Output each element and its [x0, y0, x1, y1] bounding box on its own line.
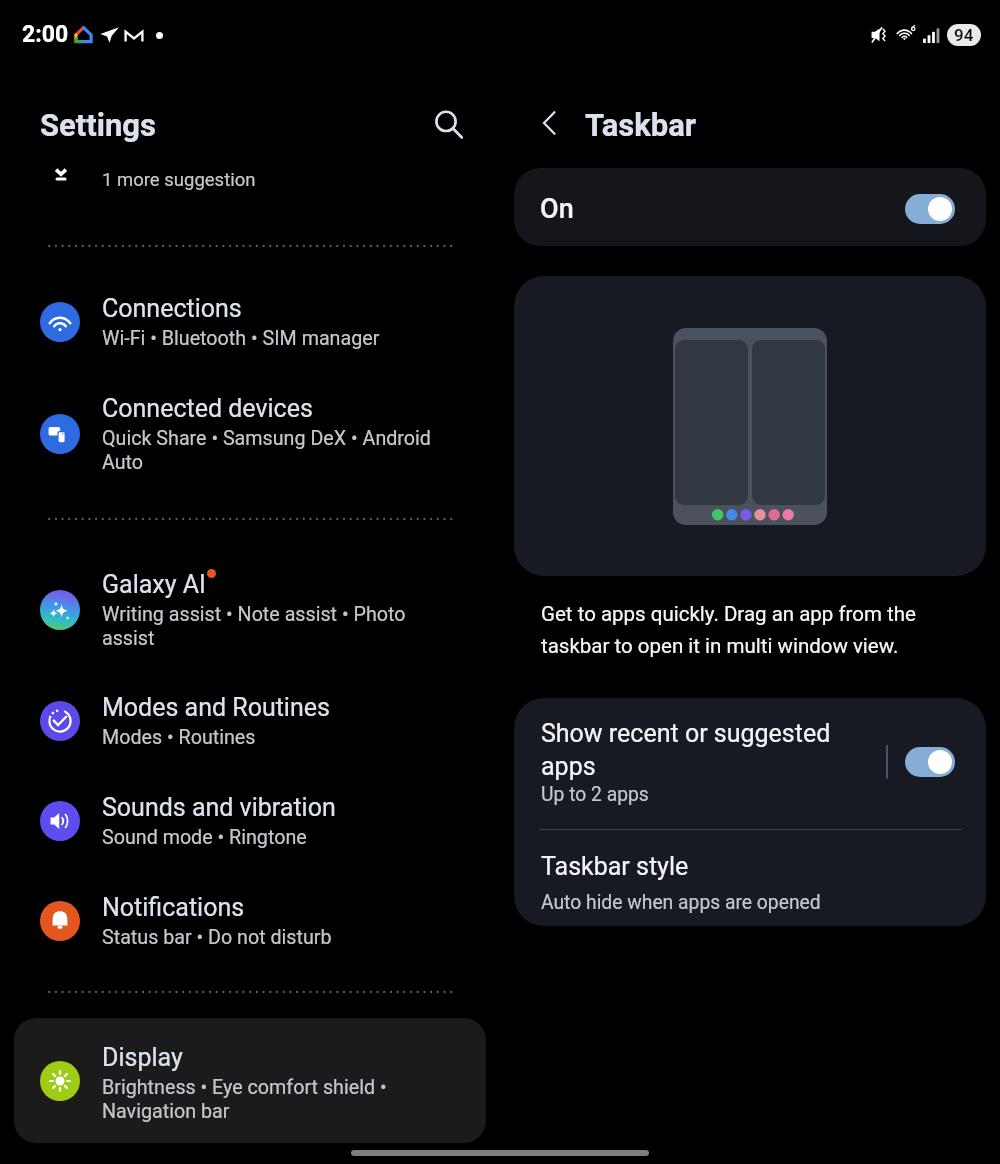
button[interactable]: Taskbar style — [514, 830, 986, 926]
button[interactable]: Modes and Routines — [0, 675, 500, 767]
staticText: Writing assist • Note assist • Photo — [102, 603, 406, 626]
button[interactable]: Sounds and vibration — [0, 775, 500, 867]
button[interactable]: 1 more suggestion — [0, 158, 500, 210]
staticText: On — [540, 193, 574, 225]
staticText: Auto — [102, 451, 144, 474]
staticText: Get to apps quickly. Drag an app from th… — [541, 602, 916, 626]
button[interactable]: Show recent or suggested — [514, 698, 986, 828]
staticText: Taskbar — [585, 107, 697, 143]
staticText: Brightness • Eye comfort shield • — [102, 1076, 387, 1099]
button[interactable]: Search — [424, 100, 472, 148]
button[interactable]: Back — [526, 99, 574, 147]
staticText: Navigation bar — [102, 1100, 230, 1123]
staticText: Sound mode • Ringtone — [102, 826, 307, 849]
button[interactable]: Toggle on — [905, 747, 955, 777]
staticText: 94 — [954, 25, 974, 45]
button[interactable]: Connections — [0, 276, 500, 368]
button[interactable]: Display — [14, 1018, 486, 1143]
staticText: Sounds and vibration — [102, 793, 336, 822]
staticText: Connections — [102, 294, 242, 323]
staticText: Modes • Routines — [102, 726, 256, 749]
staticText: assist — [102, 627, 155, 650]
button[interactable]: Galaxy AI — [0, 564, 500, 680]
staticText: Up to 2 apps — [541, 783, 649, 806]
staticText: 1 more suggestion — [102, 169, 256, 191]
staticText: apps — [541, 752, 596, 781]
staticText: Display — [102, 1043, 183, 1072]
staticText: Status bar • Do not disturb — [102, 926, 332, 949]
button[interactable]: On — [514, 168, 986, 246]
staticText: Auto hide when apps are opened — [541, 891, 821, 914]
staticText: Notifications — [102, 893, 245, 922]
button[interactable]: Connected devices — [0, 388, 500, 504]
button[interactable]: Toggle on — [905, 194, 955, 224]
staticText: Connected devices — [102, 394, 313, 423]
staticText: Show recent or suggested — [541, 719, 831, 748]
staticText: Modes and Routines — [102, 693, 330, 722]
button[interactable]: Notifications — [0, 875, 500, 967]
staticText: Wi-Fi • Bluetooth • SIM manager — [102, 327, 380, 350]
staticText: Quick Share • Samsung DeX • Android — [102, 427, 431, 450]
staticText: taskbar to open it in multi window view. — [541, 634, 899, 658]
staticText: Galaxy AI — [102, 570, 206, 599]
staticText: Settings — [40, 107, 157, 143]
staticText: 2:00 — [22, 21, 69, 48]
staticText: Taskbar style — [541, 852, 689, 881]
